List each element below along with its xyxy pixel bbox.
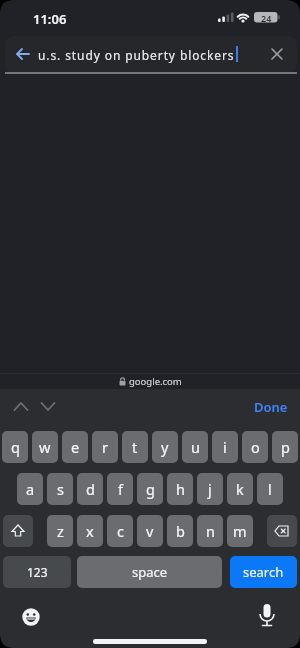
staticText: w: [39, 437, 51, 457]
staticText: s: [57, 479, 64, 499]
button[interactable]: r: [92, 431, 118, 463]
button[interactable]: o: [242, 431, 268, 463]
staticText: i: [223, 437, 227, 457]
button[interactable]: w: [32, 431, 58, 463]
button[interactable]: f: [107, 473, 133, 505]
button[interactable]: x: [77, 515, 103, 547]
staticText: u: [191, 437, 200, 457]
button[interactable]: y: [152, 431, 178, 463]
staticText: f: [118, 479, 123, 499]
button[interactable]: e: [62, 431, 88, 463]
button[interactable]: v: [137, 515, 163, 547]
button[interactable]: 123: [3, 556, 71, 588]
button[interactable]: [267, 515, 297, 547]
staticText: 24: [261, 12, 272, 23]
button[interactable]: s: [47, 473, 73, 505]
staticText: 123: [27, 564, 48, 580]
staticText: 11:06: [33, 10, 67, 28]
button[interactable]: i: [212, 431, 238, 463]
button[interactable]: [13, 400, 31, 412]
button[interactable]: c: [107, 515, 133, 547]
button[interactable]: a: [17, 473, 43, 505]
staticText: v: [146, 521, 154, 541]
staticText: x: [86, 521, 94, 541]
button[interactable]: [3, 515, 33, 547]
button[interactable]: search: [230, 556, 297, 588]
staticText: e: [71, 437, 80, 457]
staticText: o: [251, 437, 260, 457]
button[interactable]: [22, 608, 40, 626]
button[interactable]: g: [137, 473, 163, 505]
button[interactable]: b: [167, 515, 193, 547]
staticText: Done: [254, 398, 288, 416]
staticText: k: [236, 479, 244, 499]
staticText: p: [281, 437, 290, 457]
staticText: q: [11, 437, 20, 457]
staticText: t: [132, 437, 138, 457]
staticText: h: [176, 479, 185, 499]
staticText: c: [117, 521, 124, 541]
button[interactable]: q: [2, 431, 28, 463]
staticText: r: [102, 437, 108, 457]
staticText: m: [233, 521, 247, 541]
button[interactable]: k: [227, 473, 253, 505]
button[interactable]: [271, 48, 283, 60]
staticText: google.com: [129, 375, 182, 388]
staticText: l: [268, 479, 272, 499]
staticText: d: [86, 479, 95, 499]
staticText: y: [161, 437, 169, 457]
button[interactable]: space: [77, 556, 222, 588]
staticText: z: [57, 521, 64, 541]
button[interactable]: h: [167, 473, 193, 505]
staticText: n: [206, 521, 215, 541]
staticText: search: [243, 563, 284, 581]
button[interactable]: d: [77, 473, 103, 505]
button[interactable]: [258, 603, 276, 630]
staticText: b: [176, 521, 185, 541]
staticText: u.s. study on puberty blockers: [38, 47, 235, 63]
button[interactable]: [40, 400, 58, 412]
staticText: j: [208, 479, 212, 499]
button[interactable]: u: [182, 431, 208, 463]
button[interactable]: m: [227, 515, 253, 547]
button[interactable]: j: [197, 473, 223, 505]
button[interactable]: t: [122, 431, 148, 463]
staticText: a: [26, 479, 35, 499]
button[interactable]: z: [47, 515, 73, 547]
button[interactable]: p: [272, 431, 298, 463]
button[interactable]: n: [197, 515, 223, 547]
button[interactable]: [16, 48, 30, 60]
button[interactable]: Done: [250, 398, 292, 416]
staticText: space: [132, 563, 168, 581]
button[interactable]: l: [257, 473, 283, 505]
staticText: g: [146, 479, 155, 499]
button[interactable]: [5, 36, 297, 73]
